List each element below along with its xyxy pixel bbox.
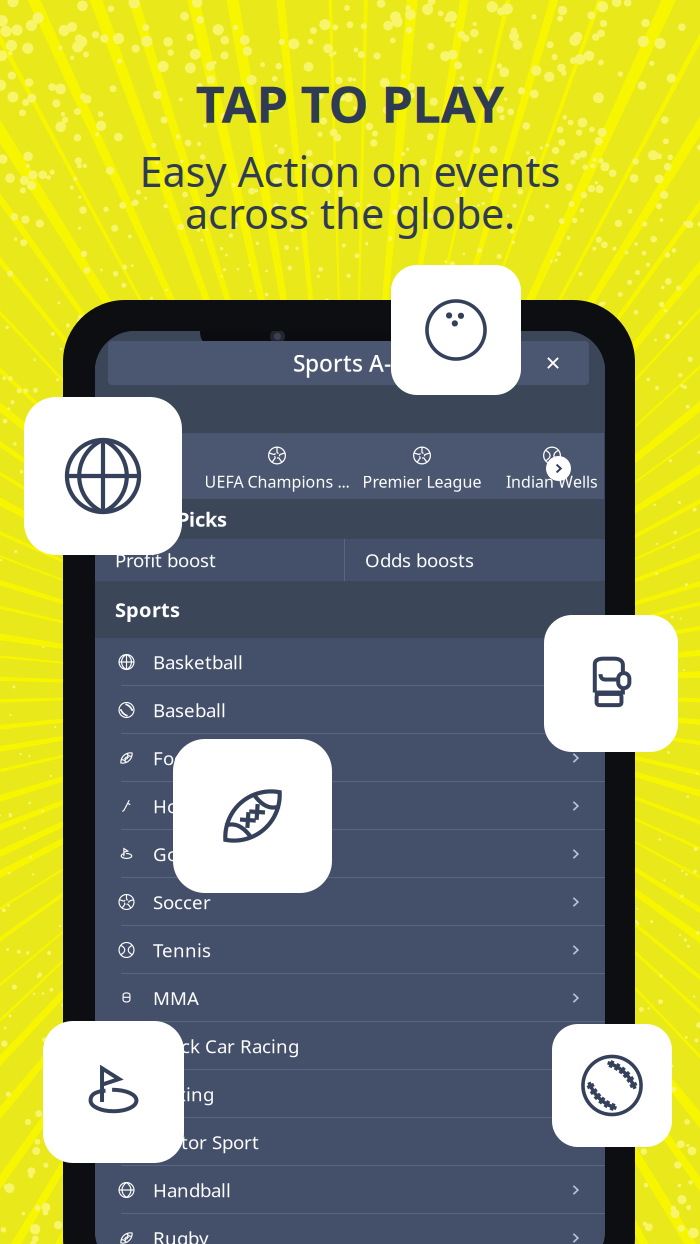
button[interactable]: UEFA Champions ...: [202, 430, 352, 502]
staticText: TAP TO PLAY: [195, 69, 504, 137]
staticText: Hockey: [153, 794, 217, 818]
button[interactable]: MMA: [95, 974, 605, 1022]
button[interactable]: Premier League: [352, 430, 492, 502]
button[interactable]: Golf: [95, 830, 605, 878]
button[interactable]: NCAAB: [102, 430, 202, 502]
button[interactable]: Hockey: [95, 782, 605, 830]
button[interactable]: Basketball: [95, 638, 605, 686]
staticText: Rugby: [153, 1226, 209, 1244]
button[interactable]: Profit boost: [95, 539, 345, 581]
staticText: Basketball: [153, 650, 243, 674]
button[interactable]: Football: [95, 734, 605, 782]
staticText: Sports: [115, 596, 180, 623]
button[interactable]: More leagues: [546, 456, 571, 481]
staticText: Golf: [153, 842, 189, 866]
staticText: Quick Picks: [115, 506, 227, 532]
staticText: Baseball: [153, 698, 226, 722]
staticText: Soccer: [153, 890, 211, 914]
staticText: Football: [153, 746, 223, 770]
staticText: Handball: [153, 1178, 231, 1202]
staticText: Stock Car Racing: [153, 1034, 299, 1058]
staticText: Tennis: [153, 938, 211, 962]
button[interactable]: Boxing: [95, 1070, 605, 1118]
button[interactable]: Close: [531, 341, 575, 385]
staticText: Easy Action on events: [139, 144, 560, 198]
button[interactable]: Soccer: [95, 878, 605, 926]
staticText: Motor Sport: [153, 1130, 259, 1154]
staticText: across the globe.: [185, 186, 515, 240]
button[interactable]: Motor Sport: [95, 1118, 605, 1166]
button[interactable]: Baseball: [95, 686, 605, 734]
button[interactable]: Indian Wells: [492, 430, 612, 502]
staticText: Boxing: [153, 1082, 214, 1106]
staticText: NCAAB: [126, 471, 178, 492]
button[interactable]: Stock Car Racing: [95, 1022, 605, 1070]
staticText: UEFA Champions ...: [204, 471, 349, 492]
staticText: Odds boosts: [365, 548, 474, 572]
button[interactable]: Rugby: [95, 1214, 605, 1244]
staticText: Premier League: [362, 471, 481, 492]
button[interactable]: Handball: [95, 1166, 605, 1214]
button[interactable]: Tennis: [95, 926, 605, 974]
staticText: Indian Wells: [506, 471, 598, 492]
button[interactable]: Odds boosts: [345, 539, 605, 581]
staticText: Profit boost: [115, 548, 216, 572]
staticText: Sports A-Z: [293, 348, 404, 378]
staticText: MMA: [153, 986, 199, 1010]
